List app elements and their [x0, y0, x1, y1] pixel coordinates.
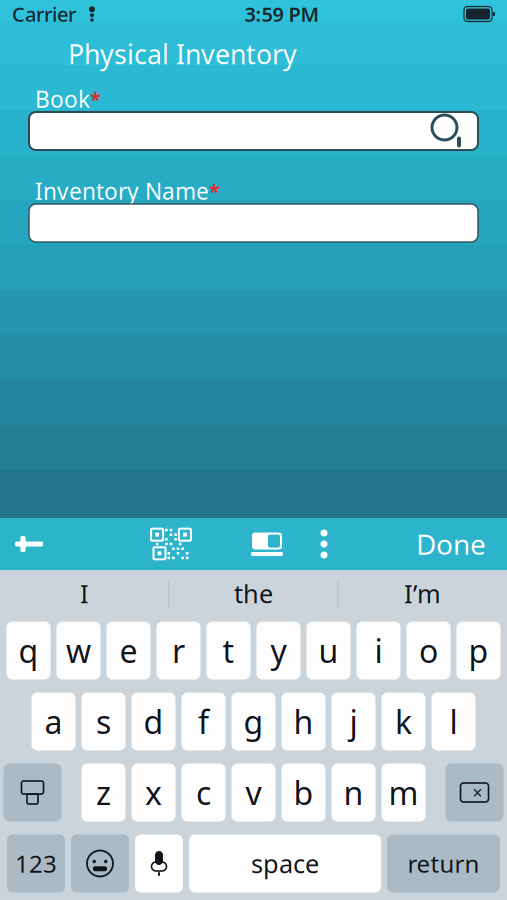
button[interactable]: 123 — [7, 834, 65, 892]
button[interactable]: q — [6, 621, 50, 679]
button[interactable]: Scan QR code — [144, 518, 198, 570]
button[interactable]: the — [169, 570, 337, 616]
button[interactable]: d — [131, 692, 175, 750]
button[interactable]: j — [331, 692, 375, 750]
staticText: v — [245, 771, 261, 814]
button[interactable]: o — [406, 621, 450, 679]
button[interactable]: v — [231, 763, 275, 821]
staticText: Carrier — [12, 1, 76, 27]
button[interactable]: Erase — [240, 518, 294, 570]
staticText: j — [349, 700, 357, 743]
button[interactable]: s — [81, 692, 125, 750]
button[interactable]: space — [189, 834, 381, 892]
button[interactable]: return — [387, 834, 500, 892]
button[interactable]: I’m — [338, 570, 506, 616]
staticText: Physical Inventory — [68, 36, 297, 72]
button[interactable]: Delete — [445, 763, 503, 821]
button[interactable] — [29, 112, 478, 150]
button[interactable]: I — [0, 570, 168, 616]
staticText: x — [145, 771, 162, 814]
button[interactable]: Done — [416, 518, 507, 570]
button[interactable]: a — [31, 692, 75, 750]
staticText: c — [196, 771, 211, 814]
button[interactable]: Shift — [3, 763, 61, 821]
staticText: m — [388, 771, 418, 814]
button[interactable]: l — [431, 692, 475, 750]
staticText: space — [251, 847, 319, 880]
button[interactable]: k — [381, 692, 425, 750]
staticText: o — [419, 629, 438, 672]
button[interactable] — [29, 204, 478, 242]
staticText: * — [90, 86, 101, 112]
button[interactable]: w — [56, 621, 100, 679]
button[interactable]: Back — [0, 518, 58, 570]
button[interactable]: Dictation — [135, 834, 183, 892]
staticText: r — [172, 629, 185, 672]
button[interactable]: y — [256, 621, 300, 679]
button[interactable]: Emoji — [71, 834, 129, 892]
staticText: f — [198, 700, 209, 743]
button[interactable]: m — [381, 763, 425, 821]
staticText: n — [343, 771, 363, 814]
staticText: b — [293, 771, 313, 814]
button[interactable]: e — [106, 621, 150, 679]
staticText: g — [243, 700, 263, 743]
staticText: u — [318, 629, 338, 672]
staticText: l — [449, 700, 457, 743]
button[interactable]: g — [231, 692, 275, 750]
button[interactable]: p — [456, 621, 500, 679]
staticText: Book — [35, 84, 90, 114]
staticText: q — [18, 629, 38, 672]
staticText: z — [96, 771, 111, 814]
staticText: the — [234, 577, 273, 610]
button[interactable]: u — [306, 621, 350, 679]
staticText: Done — [416, 525, 486, 563]
staticText: p — [468, 629, 488, 672]
staticText: i — [374, 629, 382, 672]
button[interactable]: r — [156, 621, 200, 679]
staticText: h — [293, 700, 313, 743]
button[interactable]: t — [206, 621, 250, 679]
staticText: I’m — [404, 577, 441, 610]
button[interactable]: b — [281, 763, 325, 821]
button[interactable]: n — [331, 763, 375, 821]
staticText: 123 — [15, 848, 57, 879]
staticText: e — [119, 629, 137, 672]
staticText: d — [143, 700, 163, 743]
staticText: * — [209, 178, 220, 204]
button[interactable]: h — [281, 692, 325, 750]
staticText: s — [96, 700, 111, 743]
button[interactable]: f — [181, 692, 225, 750]
staticText: w — [66, 629, 91, 672]
button[interactable]: z — [81, 763, 125, 821]
staticText: 3:59 PM — [244, 1, 319, 27]
staticText: × — [472, 781, 482, 804]
staticText: k — [395, 700, 412, 743]
button[interactable]: i — [356, 621, 400, 679]
button[interactable]: c — [181, 763, 225, 821]
staticText: Inventory Name — [35, 176, 209, 206]
staticText: return — [407, 848, 479, 879]
button[interactable]: More options — [302, 518, 346, 570]
button[interactable]: x — [131, 763, 175, 821]
staticText: y — [270, 629, 286, 672]
staticText: a — [44, 700, 62, 743]
staticText: t — [222, 629, 234, 672]
staticText: I — [80, 577, 89, 610]
